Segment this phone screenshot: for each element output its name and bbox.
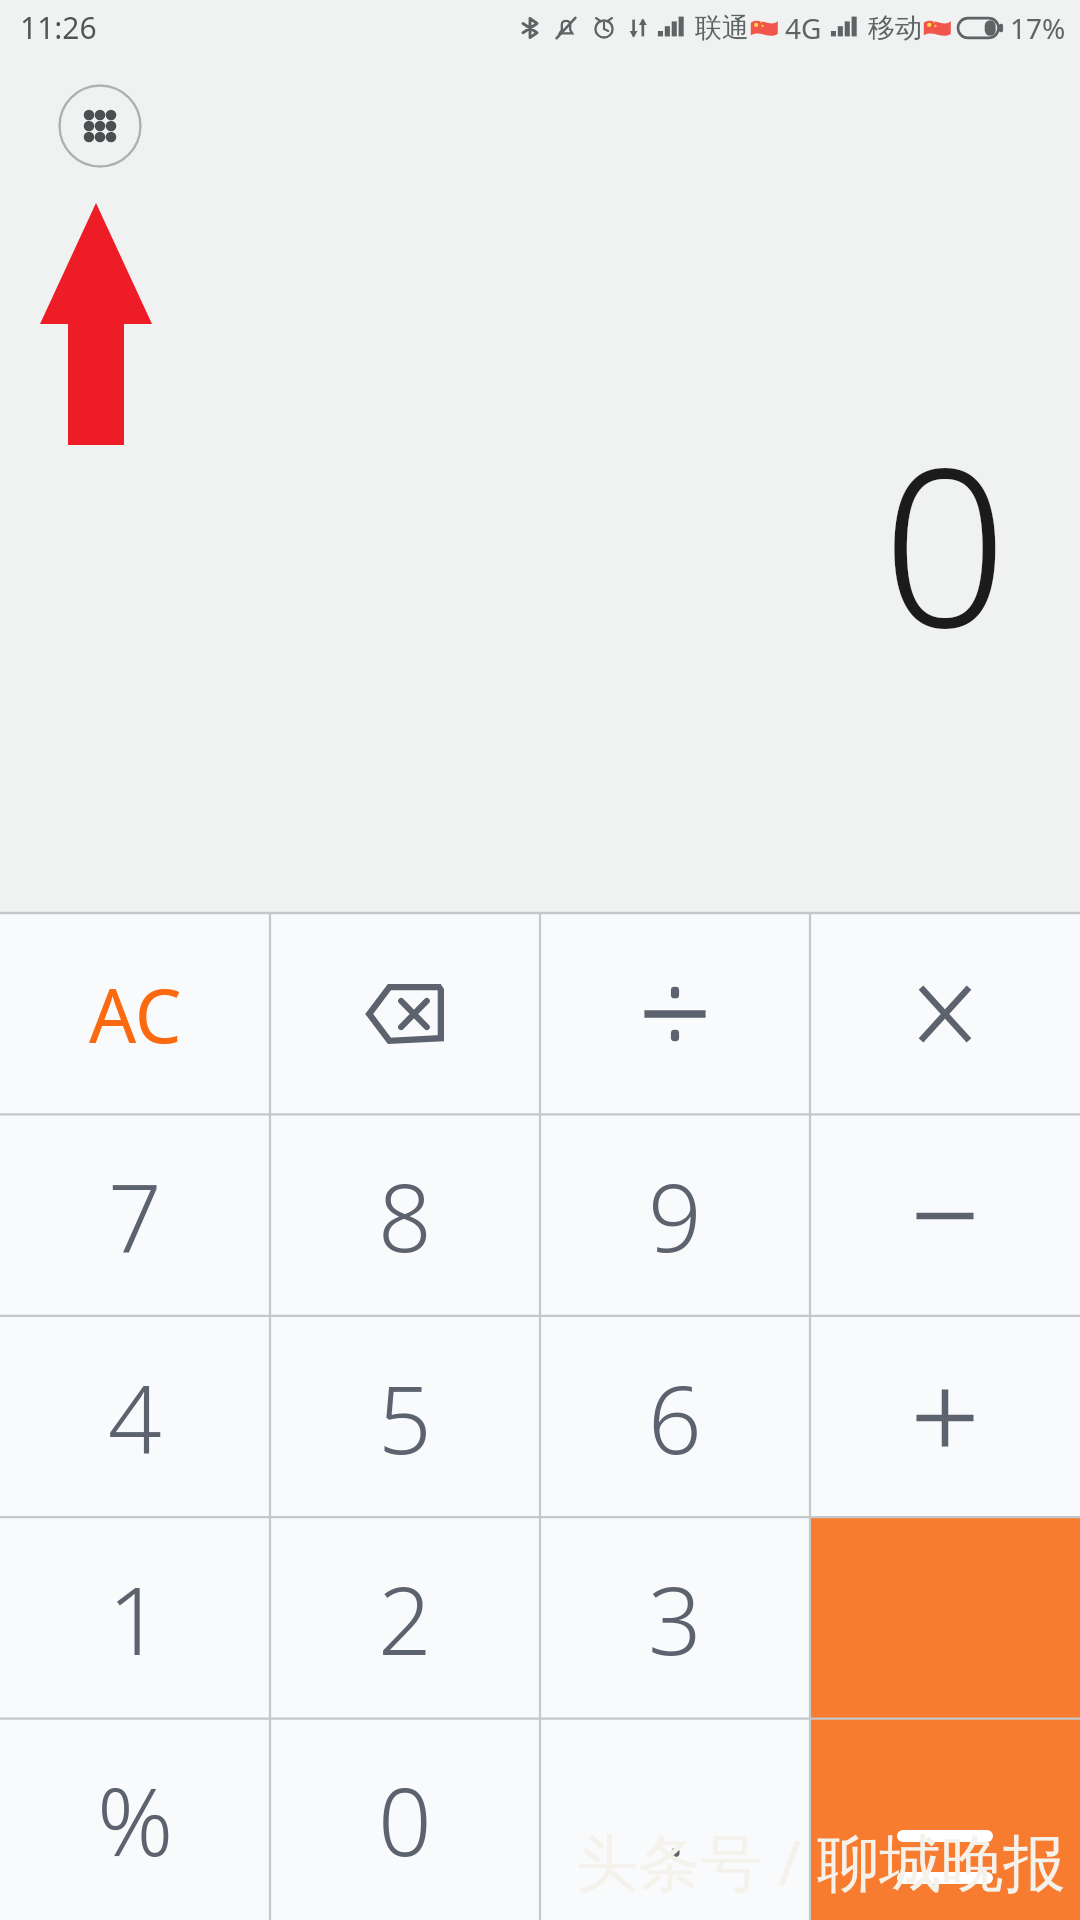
button[interactable]: . <box>540 1719 810 1920</box>
staticText: 11:26 <box>20 7 97 48</box>
button[interactable]: 9 <box>540 1115 810 1317</box>
staticText: AC <box>89 964 182 1065</box>
button[interactable]: 3 <box>540 1518 810 1719</box>
button[interactable]: 2 <box>270 1518 540 1719</box>
staticText: 9 <box>648 1152 702 1280</box>
staticText: 4 <box>108 1354 162 1482</box>
staticText: 移动 <box>868 11 922 45</box>
button[interactable]: % <box>0 1719 270 1920</box>
button[interactable]: Equals <box>810 1517 1080 1920</box>
staticText: % <box>97 1756 174 1884</box>
staticText: 6 <box>648 1354 702 1482</box>
staticText: 4G <box>785 9 822 47</box>
staticText: 17% <box>1010 9 1066 47</box>
staticText: 5 <box>378 1354 432 1482</box>
staticText: 联通 <box>695 11 749 45</box>
button[interactable]: Plus <box>810 1317 1080 1518</box>
button[interactable]: 7 <box>0 1115 270 1317</box>
staticText: . <box>664 1756 687 1884</box>
button[interactable]: 6 <box>540 1317 810 1518</box>
staticText: 8 <box>378 1152 432 1280</box>
button[interactable]: Divide <box>540 913 810 1115</box>
button[interactable]: 8 <box>270 1115 540 1317</box>
button[interactable]: Multiply <box>810 913 1080 1115</box>
staticText: 7 <box>108 1152 162 1280</box>
staticText: 1 <box>108 1555 162 1683</box>
button[interactable]: 1 <box>0 1518 270 1719</box>
button[interactable]: 5 <box>270 1317 540 1518</box>
staticText: 头条号 / 聊城晚报 <box>576 1819 1066 1904</box>
button[interactable]: Backspace <box>270 913 540 1115</box>
button[interactable]: AC <box>0 913 270 1115</box>
staticText: 3 <box>648 1555 702 1683</box>
button[interactable]: App drawer <box>58 84 142 168</box>
button[interactable]: Minus <box>810 1115 1080 1317</box>
button[interactable]: 4 <box>0 1317 270 1518</box>
staticText: 2 <box>378 1555 432 1683</box>
button[interactable]: 0 <box>270 1719 540 1920</box>
staticText: 0 <box>882 392 1008 692</box>
staticText: 0 <box>378 1756 432 1884</box>
